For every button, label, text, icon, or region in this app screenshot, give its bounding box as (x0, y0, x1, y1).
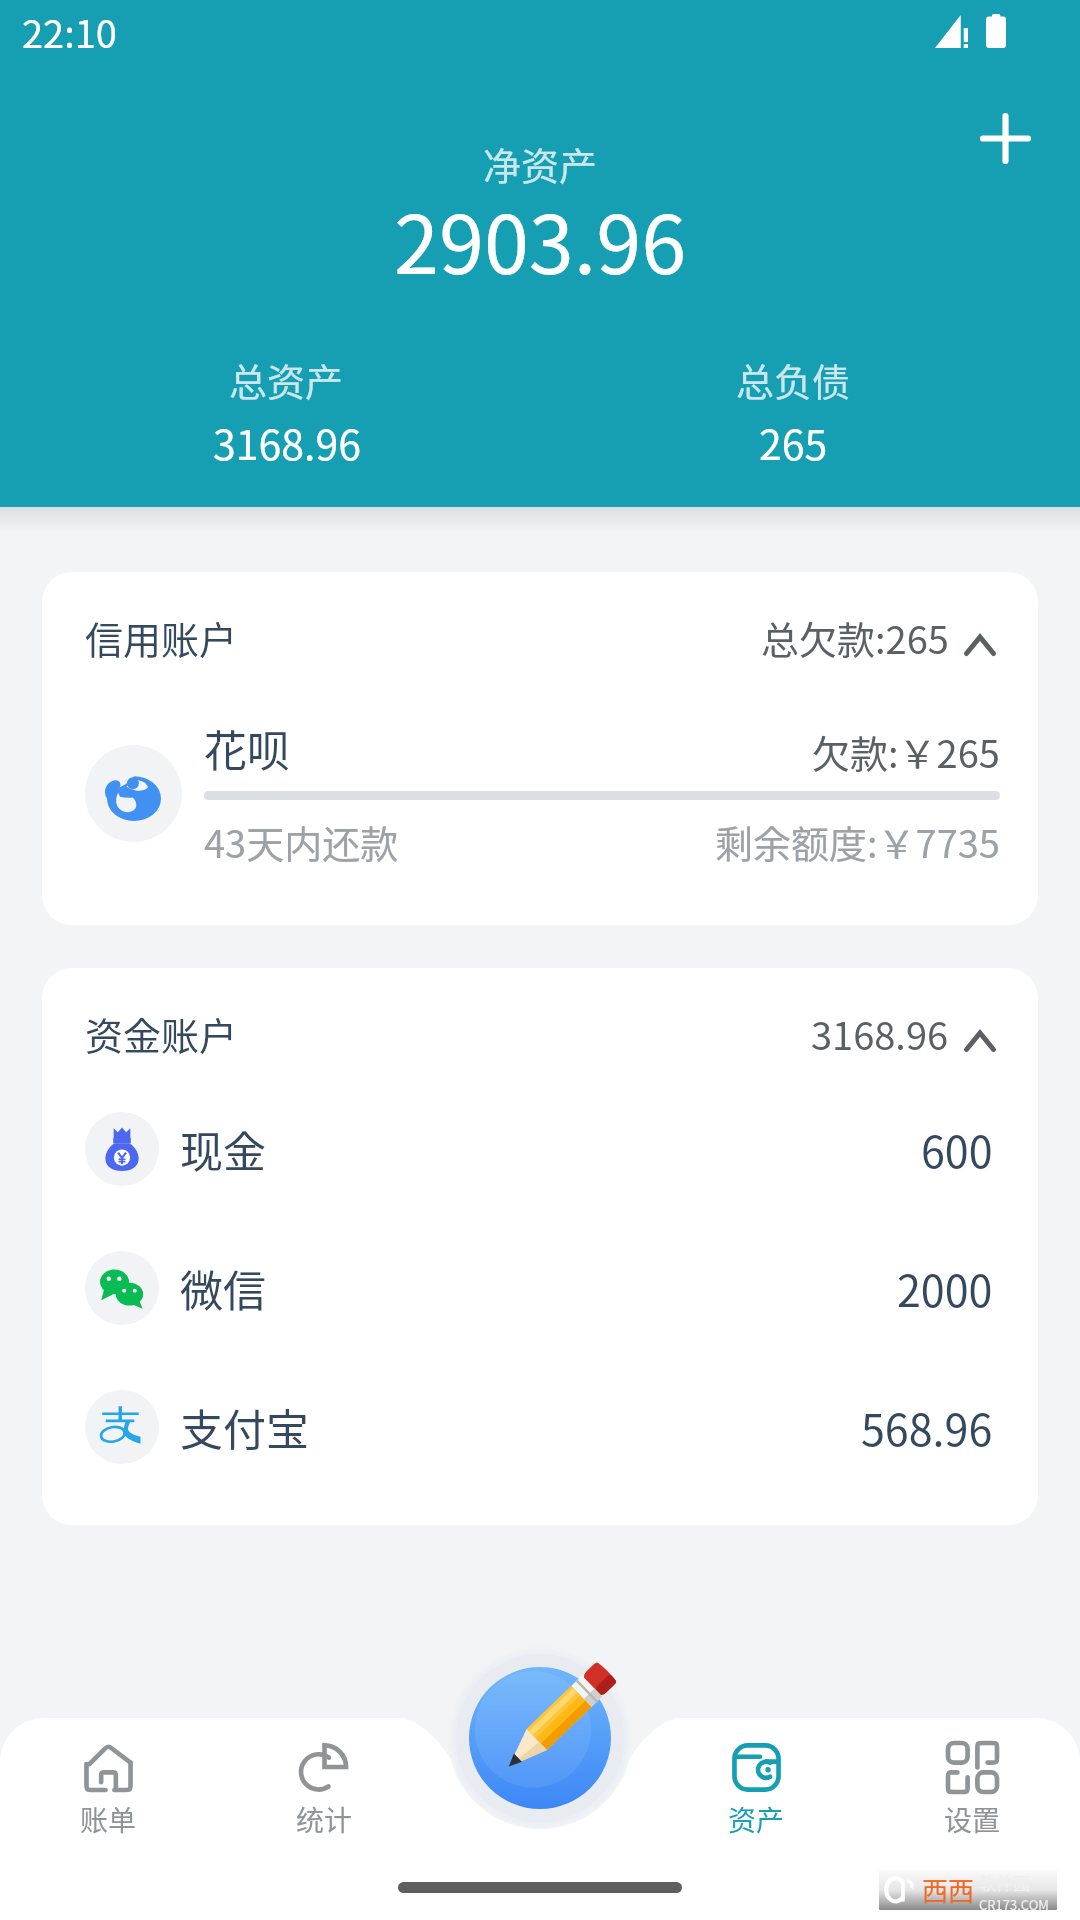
staticText: 3168.96 (811, 1006, 949, 1061)
button[interactable]: 支付宝 (42, 1357, 1038, 1496)
staticText: 600 (921, 1118, 993, 1180)
staticText: 43天内还款 (204, 814, 399, 869)
button[interactable]: 资金账户 (42, 968, 1038, 1079)
staticText: 西西 (922, 1871, 975, 1909)
staticText: 568.96 (861, 1396, 993, 1458)
staticText: 2000 (897, 1257, 993, 1319)
staticText: 微信 (180, 1257, 266, 1319)
button[interactable]: 信用账户 (42, 572, 1038, 701)
staticText: 剩余额度:￥7735 (715, 814, 1000, 869)
button[interactable]: 微信 (42, 1218, 1038, 1357)
staticText: CR173.COM (979, 1895, 1049, 1910)
staticText: 花呗 (204, 717, 290, 779)
staticText: 22:10 (22, 4, 117, 59)
staticText: 265 (759, 412, 828, 471)
staticText: 软件园 (979, 1870, 1030, 1895)
button[interactable]: Add account (957, 90, 1053, 186)
button[interactable]: 花呗 (42, 701, 1038, 925)
staticText: 欠款:￥265 (812, 724, 1000, 779)
staticText: 信用账户 (85, 610, 238, 665)
staticText: 支付宝 (180, 1396, 309, 1458)
button[interactable]: 设置 (864, 1718, 1080, 1920)
button[interactable]: 资产 (648, 1718, 864, 1920)
staticText: 现金 (180, 1118, 266, 1180)
button[interactable]: 账单 (0, 1718, 216, 1920)
staticText: 统计 (296, 1799, 353, 1840)
staticText: 2903.96 (394, 180, 687, 297)
staticText: 资金账户 (85, 1006, 238, 1061)
button[interactable]: 现金 (42, 1079, 1038, 1218)
staticText: 净资产 (483, 136, 598, 191)
staticText: 总欠款:265 (761, 610, 949, 665)
staticText: 3168.96 (213, 412, 361, 471)
staticText: 账单 (80, 1799, 137, 1840)
staticText: 总资产 (229, 352, 344, 407)
staticText: 总负债 (736, 352, 851, 407)
button[interactable]: Add record (445, 1643, 635, 1833)
staticText: 设置 (944, 1799, 1001, 1840)
button[interactable]: 统计 (216, 1718, 432, 1920)
staticText: 资产 (728, 1799, 785, 1840)
